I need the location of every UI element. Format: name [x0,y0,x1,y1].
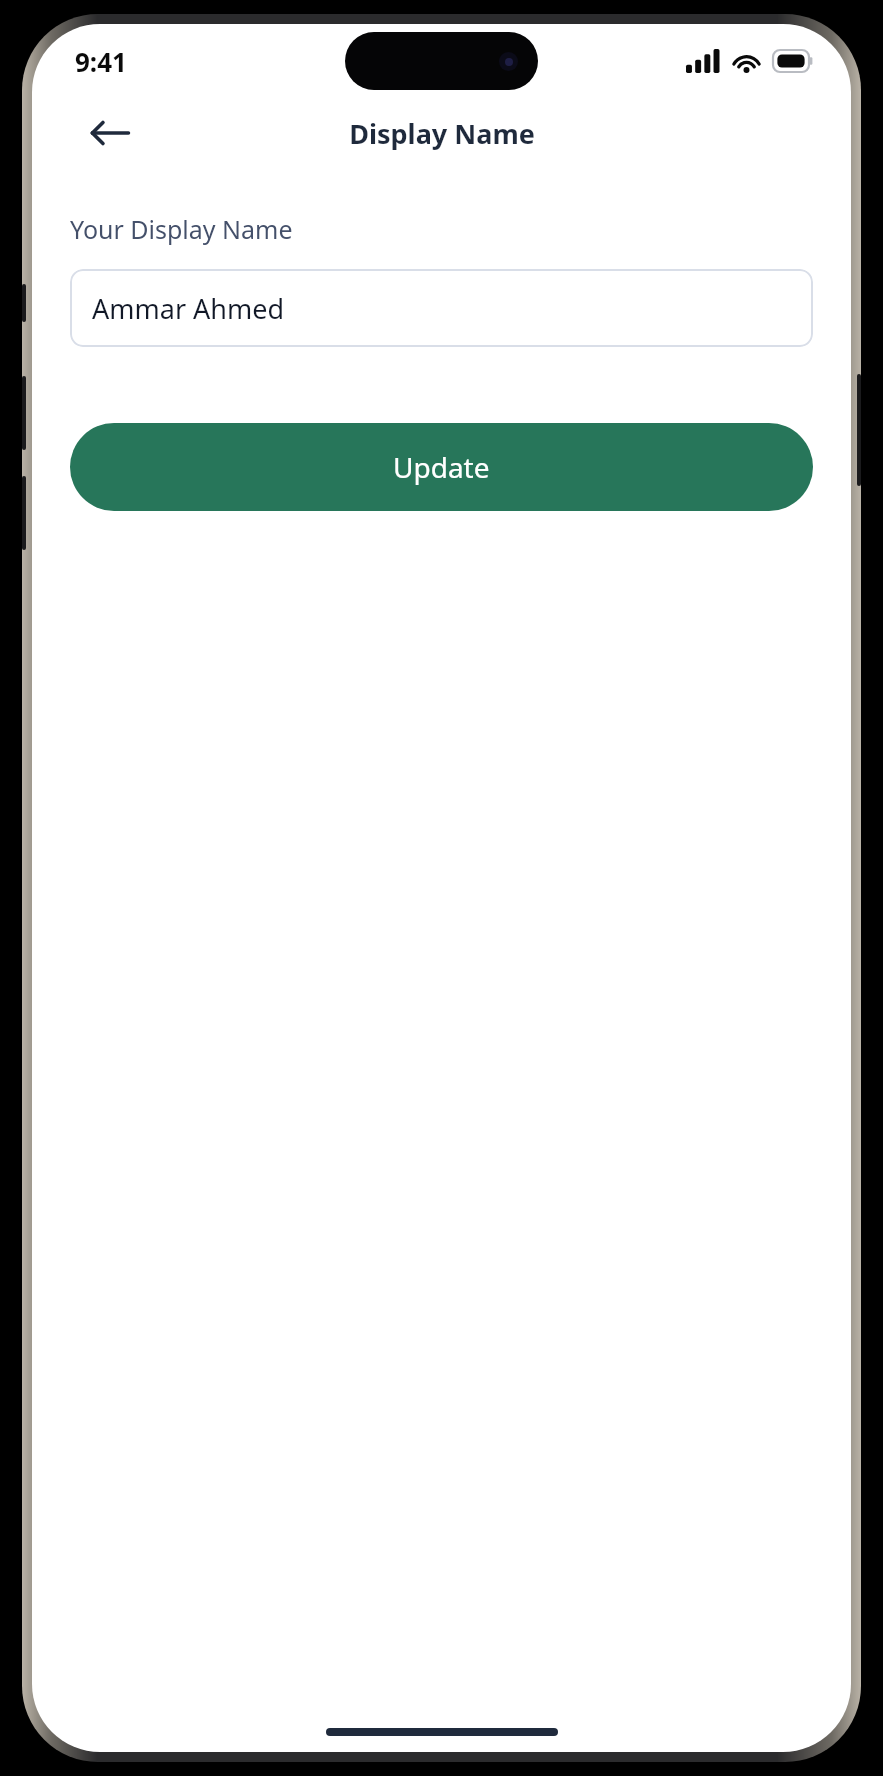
button[interactable]: Ammar Ahmed [70,269,813,347]
staticText: Update [393,448,490,486]
staticText: Display Name [349,115,535,152]
button[interactable]: Update [70,423,813,511]
button[interactable]: Back [84,107,136,159]
staticText: Ammar Ahmed [92,290,285,327]
staticText: 9:41 [75,44,127,79]
staticText: Your Display Name [70,212,293,246]
